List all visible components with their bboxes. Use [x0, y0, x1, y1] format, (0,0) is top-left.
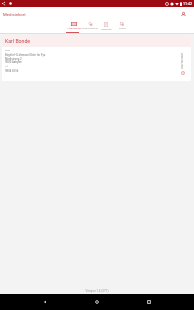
- staticText: 9000 Aabylee: [5, 60, 22, 63]
- staticText: ANBEFALINGER: [180, 53, 183, 69]
- button[interactable]: MEDISINKORT: [66, 19, 82, 35]
- staticText: RESEPTER: [101, 28, 112, 31]
- button[interactable]: Karl Bonde: [2, 35, 191, 81]
- staticText: Medisinkort: [3, 12, 26, 17]
- staticText: 11:42: [183, 2, 192, 6]
- button[interactable]: MINE LEGEMIDLER: [82, 19, 98, 35]
- staticText: Tlf: [5, 65, 8, 68]
- button[interactable]: Account: [178, 9, 188, 19]
- staticText: MEDISINKORT: [67, 27, 82, 30]
- button[interactable]: Anbefalinger: [175, 47, 191, 81]
- staticText: 9804 6556: [5, 69, 19, 72]
- staticText: Birgitte H.Lehmann/Grim for Fys.: [5, 53, 46, 56]
- button[interactable]: RESEPTER: [98, 19, 114, 35]
- button[interactable]: Back: [38, 295, 52, 309]
- staticText: Versjon 1.4 (371): [0, 289, 194, 293]
- button[interactable]: Recents: [142, 295, 156, 309]
- button[interactable]: FORNY: [114, 19, 130, 35]
- staticText: Medisinveg 2: [5, 57, 22, 60]
- button[interactable]: Home: [90, 295, 104, 309]
- staticText: Lege: [5, 49, 10, 52]
- staticText: FORNY: [119, 27, 126, 30]
- staticText: MINE LEGEMIDLER: [82, 27, 98, 30]
- staticText: Karl Bonde: [5, 38, 31, 44]
